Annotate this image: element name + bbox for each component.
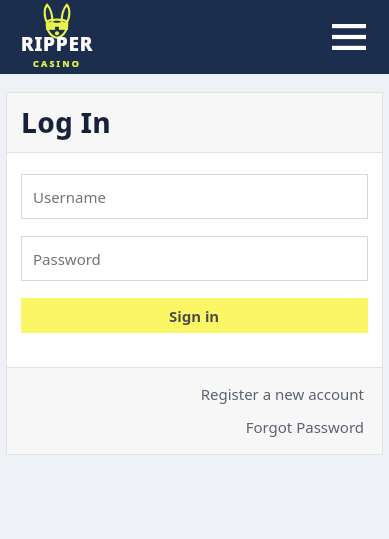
staticText: Sign in: [169, 306, 220, 326]
button[interactable]: Ripper Casino home: [16, 2, 98, 70]
button[interactable]: Menu: [327, 15, 371, 59]
button[interactable]: Register a new account: [200, 382, 364, 406]
staticText: CASINO: [33, 57, 82, 69]
staticText: Password: [33, 249, 101, 269]
staticText: Username: [33, 187, 106, 207]
button[interactable]: Username: [21, 174, 368, 219]
staticText: RIPPER: [21, 31, 94, 57]
staticText: Forgot Password: [245, 417, 364, 437]
staticText: Log In: [21, 103, 111, 141]
staticText: Register a new account: [200, 384, 364, 404]
button[interactable]: Sign in: [21, 298, 368, 333]
button[interactable]: Password: [21, 236, 368, 281]
button[interactable]: Forgot Password: [245, 415, 364, 439]
